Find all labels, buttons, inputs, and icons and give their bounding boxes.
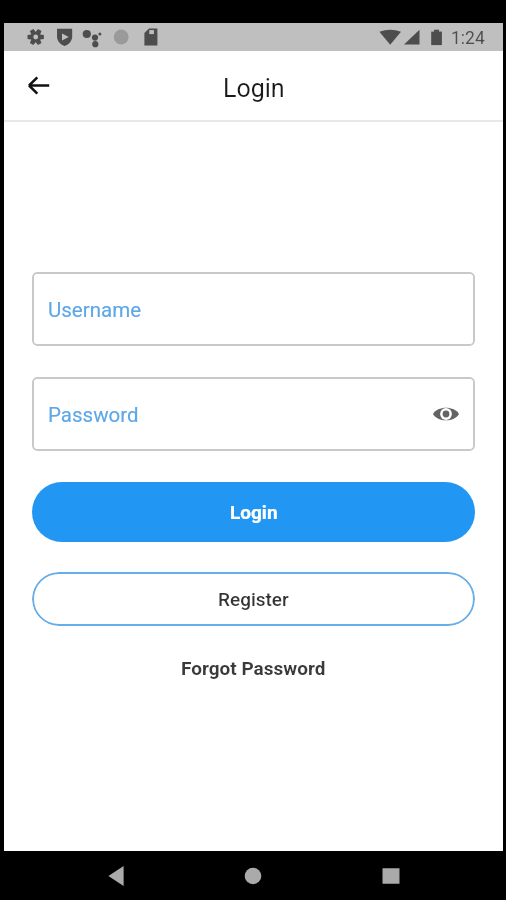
staticText: Password xyxy=(48,403,139,427)
staticText: Username xyxy=(48,298,142,322)
button[interactable]: Username xyxy=(32,272,475,346)
button[interactable]: Back xyxy=(14,61,64,111)
button[interactable]: Password xyxy=(32,377,475,451)
staticText: Register xyxy=(218,588,289,610)
button[interactable]: Login xyxy=(32,482,475,542)
staticText: Forgot Password xyxy=(181,657,326,679)
button[interactable]: Back xyxy=(92,852,140,900)
staticText: 1:24 xyxy=(451,28,485,49)
staticText: Login xyxy=(223,74,285,103)
button[interactable]: Home xyxy=(229,852,277,900)
button[interactable]: Show password xyxy=(431,399,461,429)
staticText: Login xyxy=(230,501,278,523)
button[interactable]: Forgot Password xyxy=(165,646,342,690)
button[interactable]: Recent apps xyxy=(367,852,415,900)
button[interactable]: Register xyxy=(32,572,475,626)
